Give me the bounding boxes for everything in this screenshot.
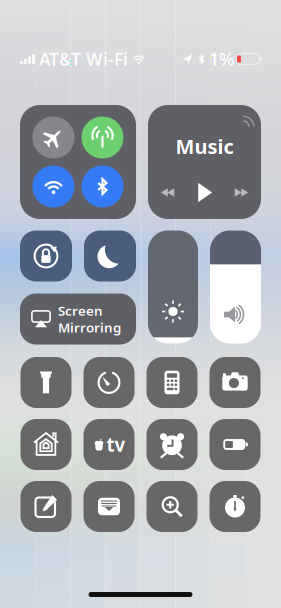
- staticText: 1%: [209, 47, 234, 70]
- button[interactable]: Previous Track: [153, 180, 182, 204]
- button[interactable]: Timer: [83, 357, 134, 408]
- staticText: tv: [106, 432, 125, 457]
- button[interactable]: Wi-Fi: [32, 165, 74, 207]
- button[interactable]: Home: [20, 419, 71, 470]
- button[interactable]: Bluetooth: [81, 165, 123, 207]
- staticText: Screen: [58, 302, 103, 319]
- button[interactable]: Volume: [210, 230, 261, 343]
- button[interactable]: Wallet: [83, 481, 134, 532]
- button[interactable]: Brightness: [148, 230, 198, 343]
- staticText: Music: [175, 133, 233, 160]
- button[interactable]: Low Power Mode: [209, 419, 260, 470]
- button[interactable]: Stopwatch: [209, 481, 260, 532]
- staticText: AT&T Wi-Fi: [39, 47, 128, 70]
- button[interactable]: Focus: [84, 230, 136, 281]
- button[interactable]: Airplane Mode: [32, 116, 74, 158]
- staticText: Mirroring: [58, 318, 121, 336]
- button[interactable]: Play: [190, 178, 219, 207]
- button[interactable]: Cellular Data: [81, 116, 123, 158]
- button[interactable]: Apple TV Remote: [83, 419, 134, 470]
- button[interactable]: Next Track: [227, 180, 256, 204]
- button[interactable]: Alarm: [146, 419, 197, 470]
- button[interactable]: Screen: [20, 293, 136, 344]
- button[interactable]: Camera: [209, 357, 260, 408]
- button[interactable]: Flashlight: [20, 357, 71, 408]
- button[interactable]: Magnifier: [146, 481, 197, 532]
- button[interactable]: AirPlay: [238, 110, 260, 132]
- button[interactable]: Rotation Lock: [20, 230, 72, 281]
- button[interactable]: Calculator: [146, 357, 197, 408]
- button[interactable]: Notes: [20, 481, 71, 532]
